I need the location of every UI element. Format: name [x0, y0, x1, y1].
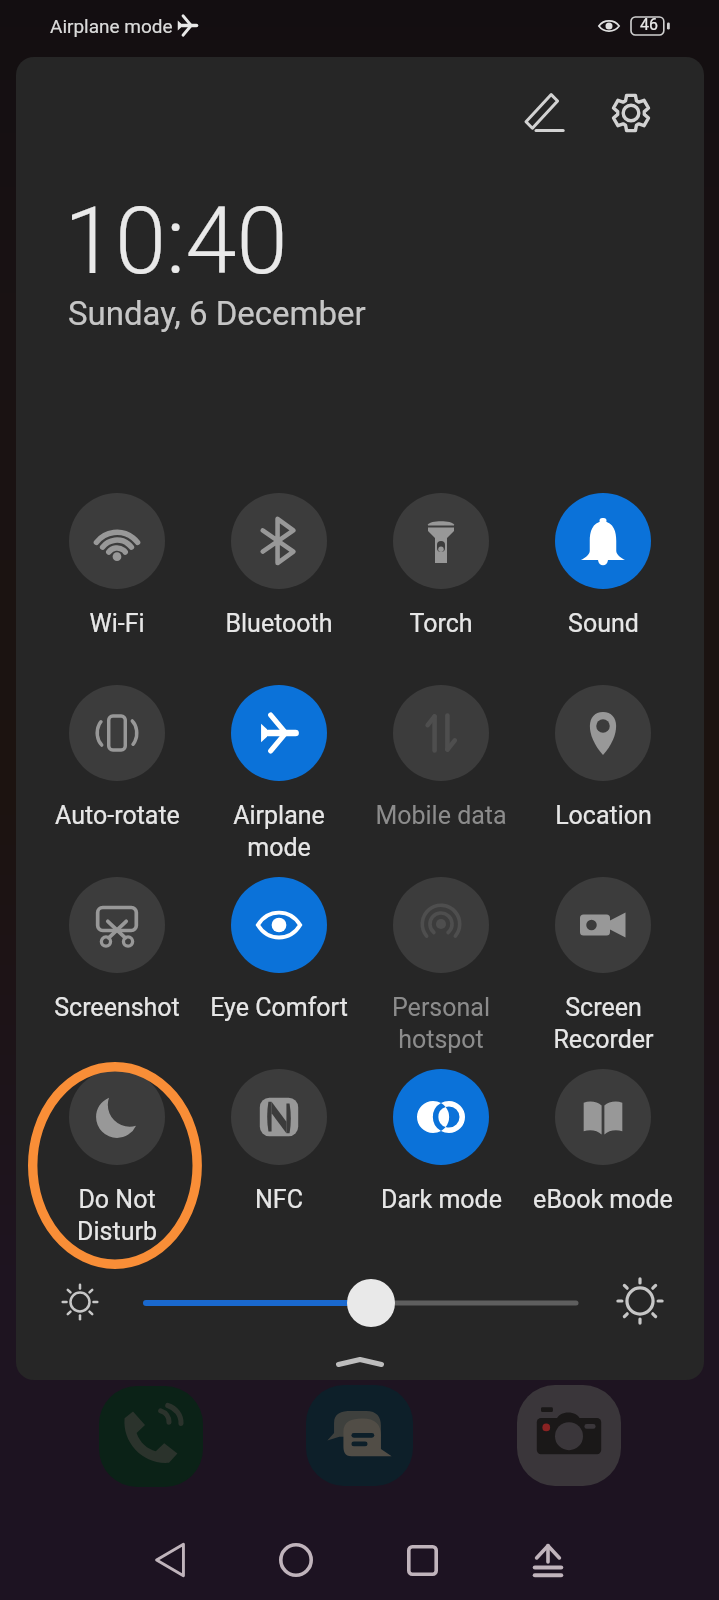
button[interactable]: Home: [266, 1530, 326, 1590]
staticText: Personal hotspot: [392, 993, 490, 1054]
button[interactable]: Screen Recorder: [518, 877, 688, 1054]
button[interactable]: Sound: [518, 493, 688, 638]
button[interactable]: Do Not Disturb: [32, 1069, 202, 1246]
button[interactable]: Back: [140, 1530, 200, 1590]
staticText: Sunday, 6 December: [68, 294, 366, 333]
staticText: Wi-Fi: [89, 609, 145, 638]
button[interactable]: Show keyboard: [518, 1530, 578, 1590]
button[interactable]: Settings: [597, 79, 665, 147]
staticText: 46: [640, 15, 658, 34]
staticText: Auto-rotate: [55, 801, 180, 830]
staticText: Location: [555, 801, 652, 830]
button[interactable]: Brightness: [134, 1278, 584, 1326]
button[interactable]: Decrease brightness: [38, 1260, 122, 1344]
button[interactable]: NFC: [194, 1069, 364, 1214]
button[interactable]: Location: [518, 685, 688, 830]
button[interactable]: Recent apps: [392, 1530, 452, 1590]
staticText: Sound: [568, 609, 639, 638]
staticText: Eye Comfort: [210, 993, 348, 1022]
button[interactable]: Auto-rotate: [32, 685, 202, 830]
button[interactable]: Phone: [99, 1386, 203, 1487]
button[interactable]: Screenshot: [32, 877, 202, 1022]
button[interactable]: Mobile data: [356, 685, 526, 830]
button[interactable]: Personal hotspot: [356, 877, 526, 1054]
button[interactable]: Dark mode: [356, 1069, 526, 1214]
button[interactable]: Messages: [306, 1385, 413, 1486]
staticText: eBook mode: [533, 1185, 673, 1214]
staticText: Airplane mode: [233, 801, 325, 862]
button[interactable]: eBook mode: [518, 1069, 688, 1214]
staticText: Torch: [409, 609, 473, 638]
button[interactable]: Camera: [517, 1385, 621, 1486]
button[interactable]: Airplane mode: [194, 685, 364, 862]
button[interactable]: Wi-Fi: [32, 493, 202, 638]
button[interactable]: Bluetooth: [194, 493, 364, 638]
button[interactable]: Torch: [356, 493, 526, 638]
staticText: Screen Recorder: [553, 993, 654, 1054]
staticText: Do Not Disturb: [77, 1185, 157, 1246]
staticText: Dark mode: [381, 1185, 502, 1214]
button[interactable]: Increase brightness: [598, 1259, 682, 1343]
staticText: Bluetooth: [225, 609, 333, 638]
staticText: Airplane mode: [50, 15, 173, 37]
staticText: Screenshot: [54, 993, 180, 1022]
button[interactable]: Eye Comfort: [194, 877, 364, 1022]
button[interactable]: Edit quick settings: [510, 79, 578, 147]
staticText: 10:40: [64, 188, 288, 296]
staticText: NFC: [255, 1185, 303, 1214]
staticText: Mobile data: [375, 801, 507, 830]
